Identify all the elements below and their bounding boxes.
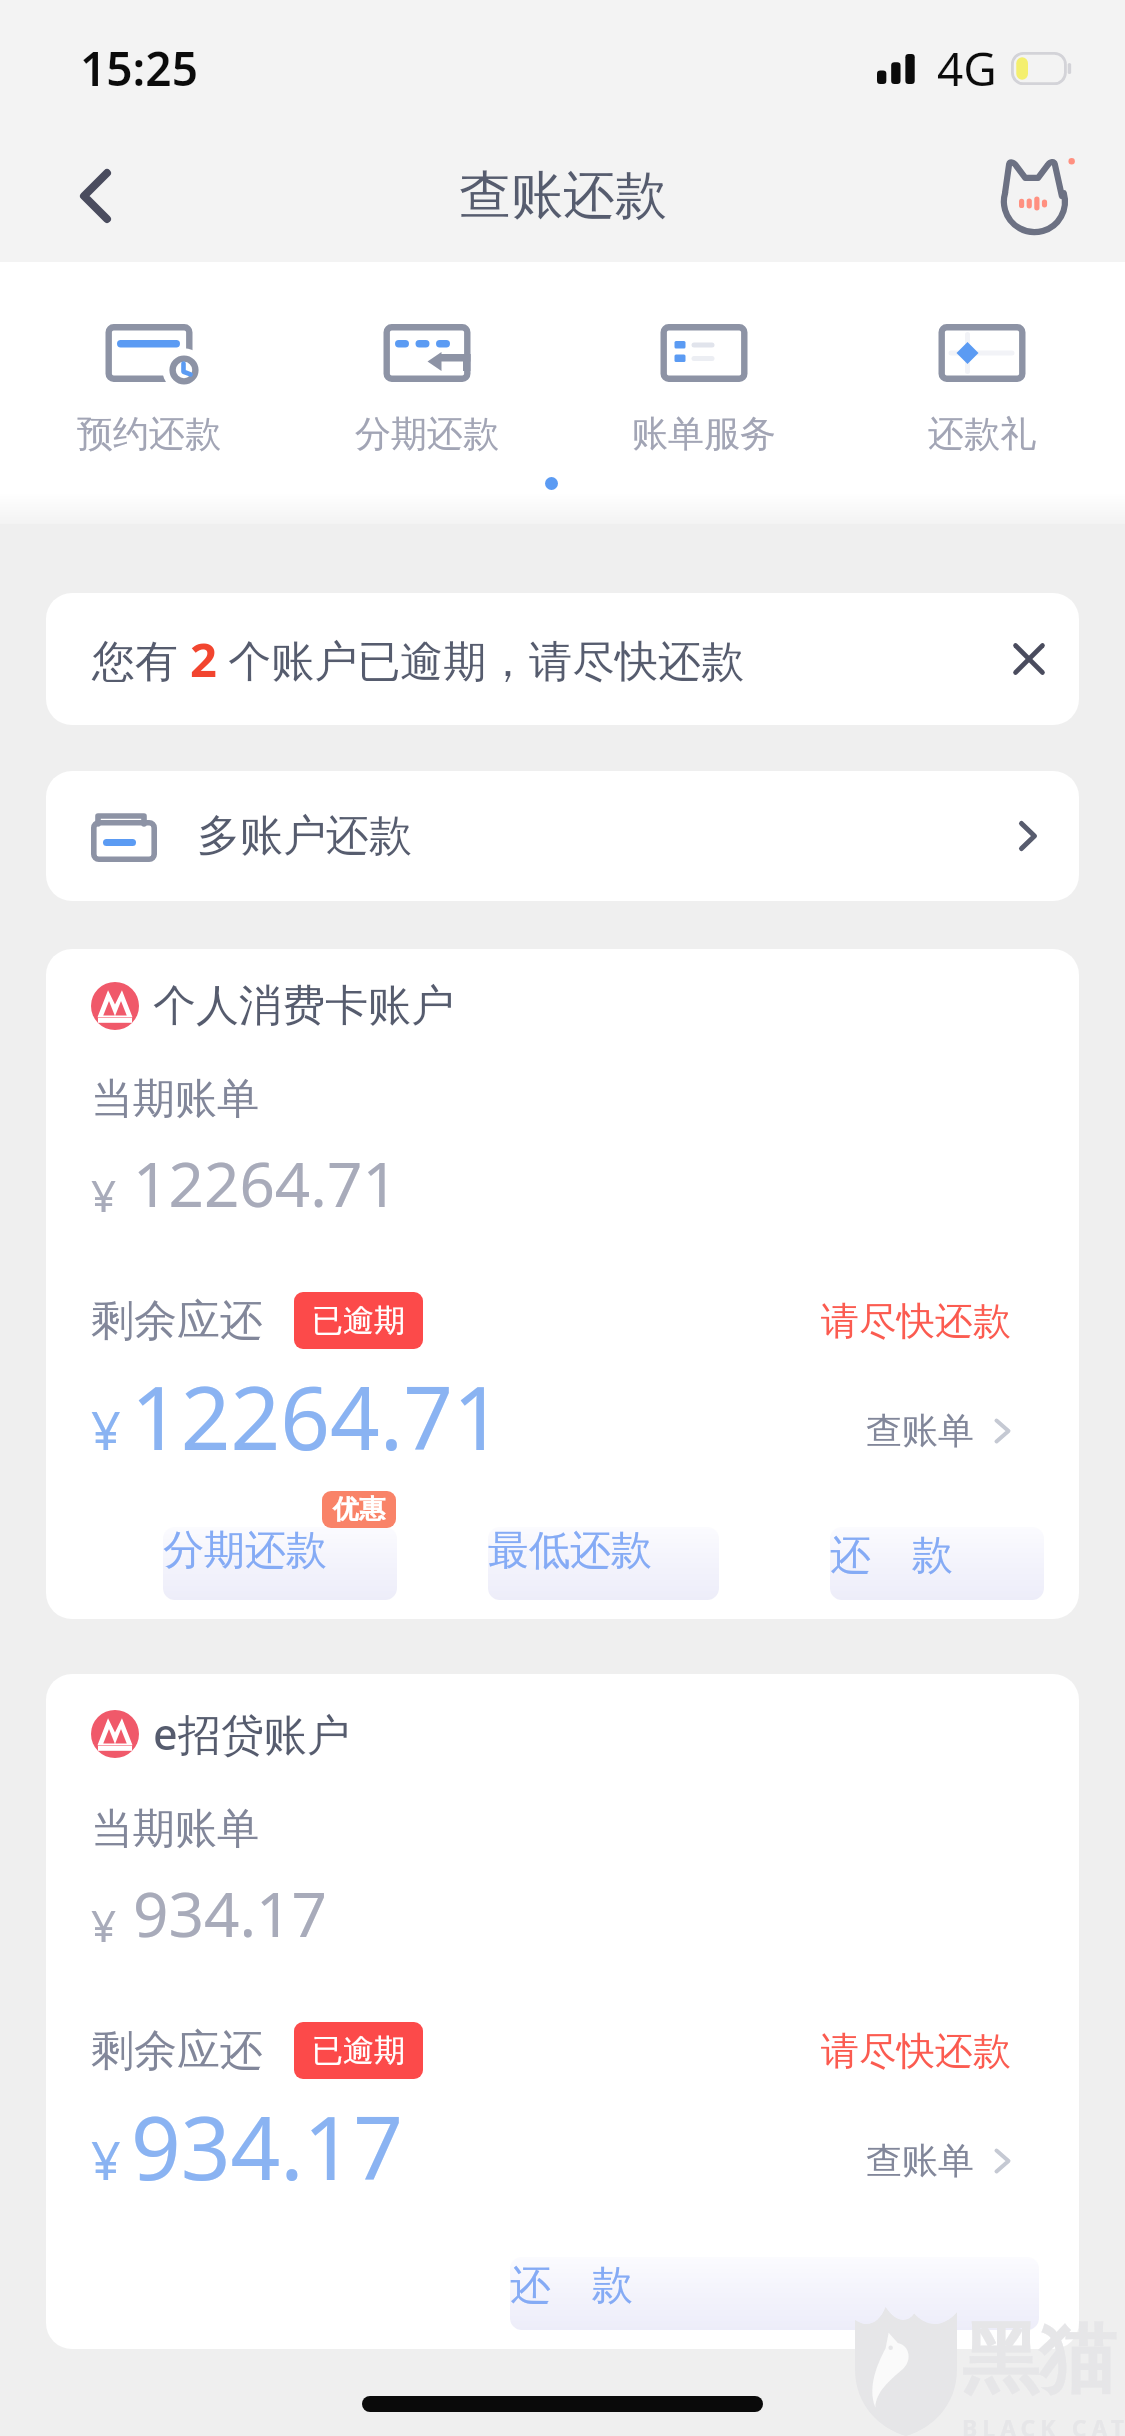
button[interactable]: Back xyxy=(40,141,150,251)
staticText: 个人消费卡账户 xyxy=(153,979,454,1033)
staticText: 分期还款 xyxy=(355,411,499,456)
button[interactable]: 账单服务 xyxy=(589,324,819,456)
staticText: 查账单 xyxy=(866,1408,974,1453)
button[interactable]: 查账单 xyxy=(866,1408,1011,1453)
staticText: 多账户还款 xyxy=(197,809,412,863)
staticText: ¥ xyxy=(91,1394,121,1465)
staticText: 优惠 xyxy=(333,1493,385,1526)
staticText: 查账还款 xyxy=(459,163,667,229)
staticText: 剩余应还 xyxy=(91,2024,263,2078)
staticText: BLACK CAT xyxy=(962,2412,1125,2436)
staticText: e招贷账户 xyxy=(153,1704,350,1763)
staticText: 请尽快还款 xyxy=(821,1297,1011,1345)
staticText: 当期账单 xyxy=(91,1803,259,1856)
staticText: 已逾期 xyxy=(312,2031,405,2070)
staticText: ¥ xyxy=(91,2124,121,2195)
staticText: 当期账单 xyxy=(91,1073,259,1126)
staticText: 934.17 xyxy=(133,1871,327,1955)
staticText: 还 款 xyxy=(510,2255,633,2311)
staticText: 还 款 xyxy=(830,1525,953,1581)
staticText: ¥ xyxy=(91,1895,117,1955)
button[interactable]: Close xyxy=(992,622,1066,696)
staticText: 15:25 xyxy=(80,37,198,100)
staticText: 个账户已逾期，请尽快还款 xyxy=(217,630,745,689)
staticText: 最低还款 xyxy=(488,1525,652,1577)
staticText: 已逾期 xyxy=(312,1301,405,1340)
staticText: 12264.71 xyxy=(131,1357,503,1475)
staticText: 黑猫 xyxy=(962,2311,1116,2408)
staticText: 934.17 xyxy=(131,2087,404,2205)
button[interactable]: 您有 xyxy=(46,593,1079,725)
staticText: 预约还款 xyxy=(77,411,221,456)
staticText: 4G xyxy=(937,37,997,100)
button[interactable]: 还款礼 xyxy=(867,324,1097,456)
staticText: 查账单 xyxy=(866,2138,974,2183)
button[interactable]: 分期还款 xyxy=(163,1505,397,1600)
button[interactable]: 多账户还款 xyxy=(46,771,1079,901)
staticText: 还款礼 xyxy=(928,411,1036,456)
button[interactable]: 还 款 xyxy=(830,1505,1044,1600)
staticText: 账单服务 xyxy=(632,411,776,456)
staticText: ¥ xyxy=(91,1165,117,1225)
button[interactable]: 最低还款 xyxy=(488,1505,719,1600)
button[interactable]: 查账单 xyxy=(866,2138,1011,2183)
staticText: 分期还款 xyxy=(163,1525,327,1577)
button[interactable]: Voice assistant xyxy=(987,146,1087,246)
staticText: 您有 xyxy=(92,630,190,689)
button[interactable]: 预约还款 xyxy=(34,324,264,456)
button[interactable]: 还 款 xyxy=(510,2235,1039,2330)
staticText: 剩余应还 xyxy=(91,1294,263,1348)
staticText: 2 xyxy=(190,627,217,691)
button[interactable]: 分期还款 xyxy=(312,324,542,456)
staticText: 12264.71 xyxy=(133,1141,398,1225)
staticText: 请尽快还款 xyxy=(821,2027,1011,2075)
